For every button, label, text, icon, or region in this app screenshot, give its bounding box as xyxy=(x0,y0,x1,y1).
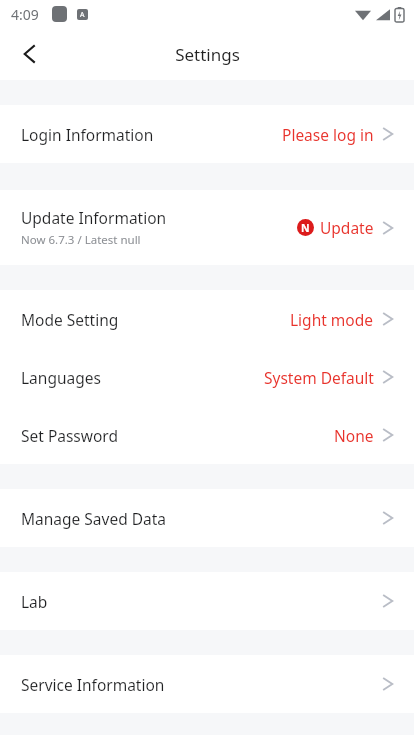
button[interactable]: Login Information xyxy=(0,105,414,163)
button[interactable]: Back xyxy=(8,32,52,76)
staticText: 4:09 xyxy=(11,5,39,24)
staticText: N xyxy=(301,221,310,235)
staticText: Set Password xyxy=(21,425,118,446)
staticText: Settings xyxy=(175,43,240,66)
staticText: Please log in xyxy=(282,124,374,145)
staticText: Languages xyxy=(21,367,101,388)
button[interactable]: Update Information xyxy=(0,190,414,265)
staticText: A xyxy=(80,10,85,20)
staticText: Service Information xyxy=(21,674,165,695)
button[interactable]: Lab xyxy=(0,572,414,630)
staticText: Light mode xyxy=(290,309,374,330)
staticText: Update xyxy=(320,217,374,238)
staticText: None xyxy=(334,425,374,446)
button[interactable]: Languages xyxy=(0,348,414,406)
staticText: Lab xyxy=(21,591,48,612)
staticText: Now 6.7.3 / Latest null xyxy=(21,232,141,248)
staticText: Login Information xyxy=(21,124,154,145)
button[interactable]: Manage Saved Data xyxy=(0,489,414,547)
staticText: Update Information xyxy=(21,207,167,228)
staticText: System Default xyxy=(264,367,374,388)
button[interactable]: Service Information xyxy=(0,655,414,713)
staticText: Manage Saved Data xyxy=(21,508,167,529)
staticText: Mode Setting xyxy=(21,309,119,330)
button[interactable]: Mode Setting xyxy=(0,290,414,348)
button[interactable]: Set Password xyxy=(0,406,414,464)
